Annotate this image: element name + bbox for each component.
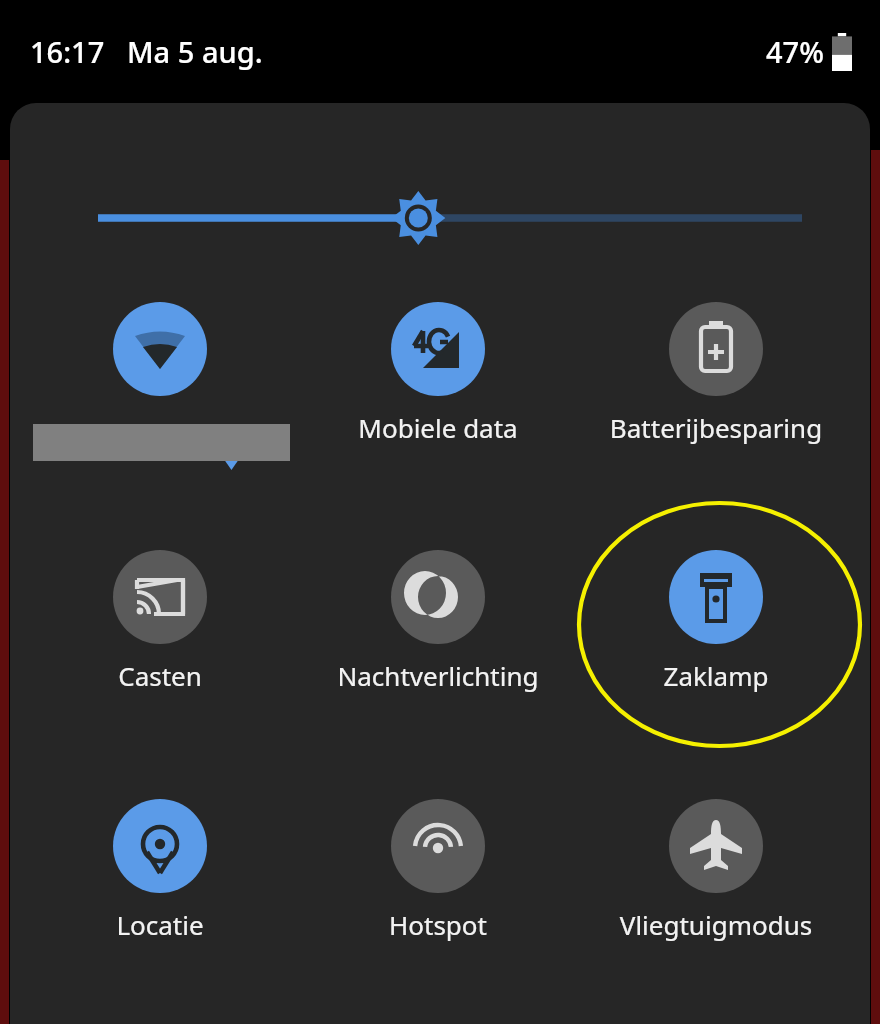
button[interactable]: Hotspot — [313, 787, 563, 947]
button[interactable]: Nachtverlichting — [313, 538, 563, 698]
staticText: Nachtverlichting — [313, 658, 563, 693]
staticText: 47% — [766, 32, 824, 71]
staticText: Hotspot — [313, 907, 563, 942]
staticText: Mobiele data — [313, 410, 563, 445]
staticText: Locatie — [35, 907, 285, 942]
button[interactable]: Wi-Fi instellingen — [220, 433, 242, 473]
staticText: Ma 5 aug. — [127, 32, 263, 71]
staticText: Vliegtuigmodus — [591, 907, 841, 942]
button[interactable]: Casten — [35, 538, 285, 698]
button[interactable]: Locatie — [35, 787, 285, 947]
button[interactable] — [70, 188, 810, 248]
button[interactable]: Vliegtuigmodus — [591, 787, 841, 947]
staticText: Zaklamp — [591, 658, 841, 693]
button[interactable]: Zaklamp — [591, 538, 841, 698]
staticText: Casten — [35, 658, 285, 693]
button[interactable]: Mobiele data — [313, 290, 563, 450]
staticText: Batterijbesparing — [591, 410, 841, 445]
button[interactable]: Batterijbesparing — [591, 290, 841, 450]
button[interactable]: Wi-Fi — [35, 290, 285, 450]
staticText: 16:17 — [30, 32, 105, 71]
